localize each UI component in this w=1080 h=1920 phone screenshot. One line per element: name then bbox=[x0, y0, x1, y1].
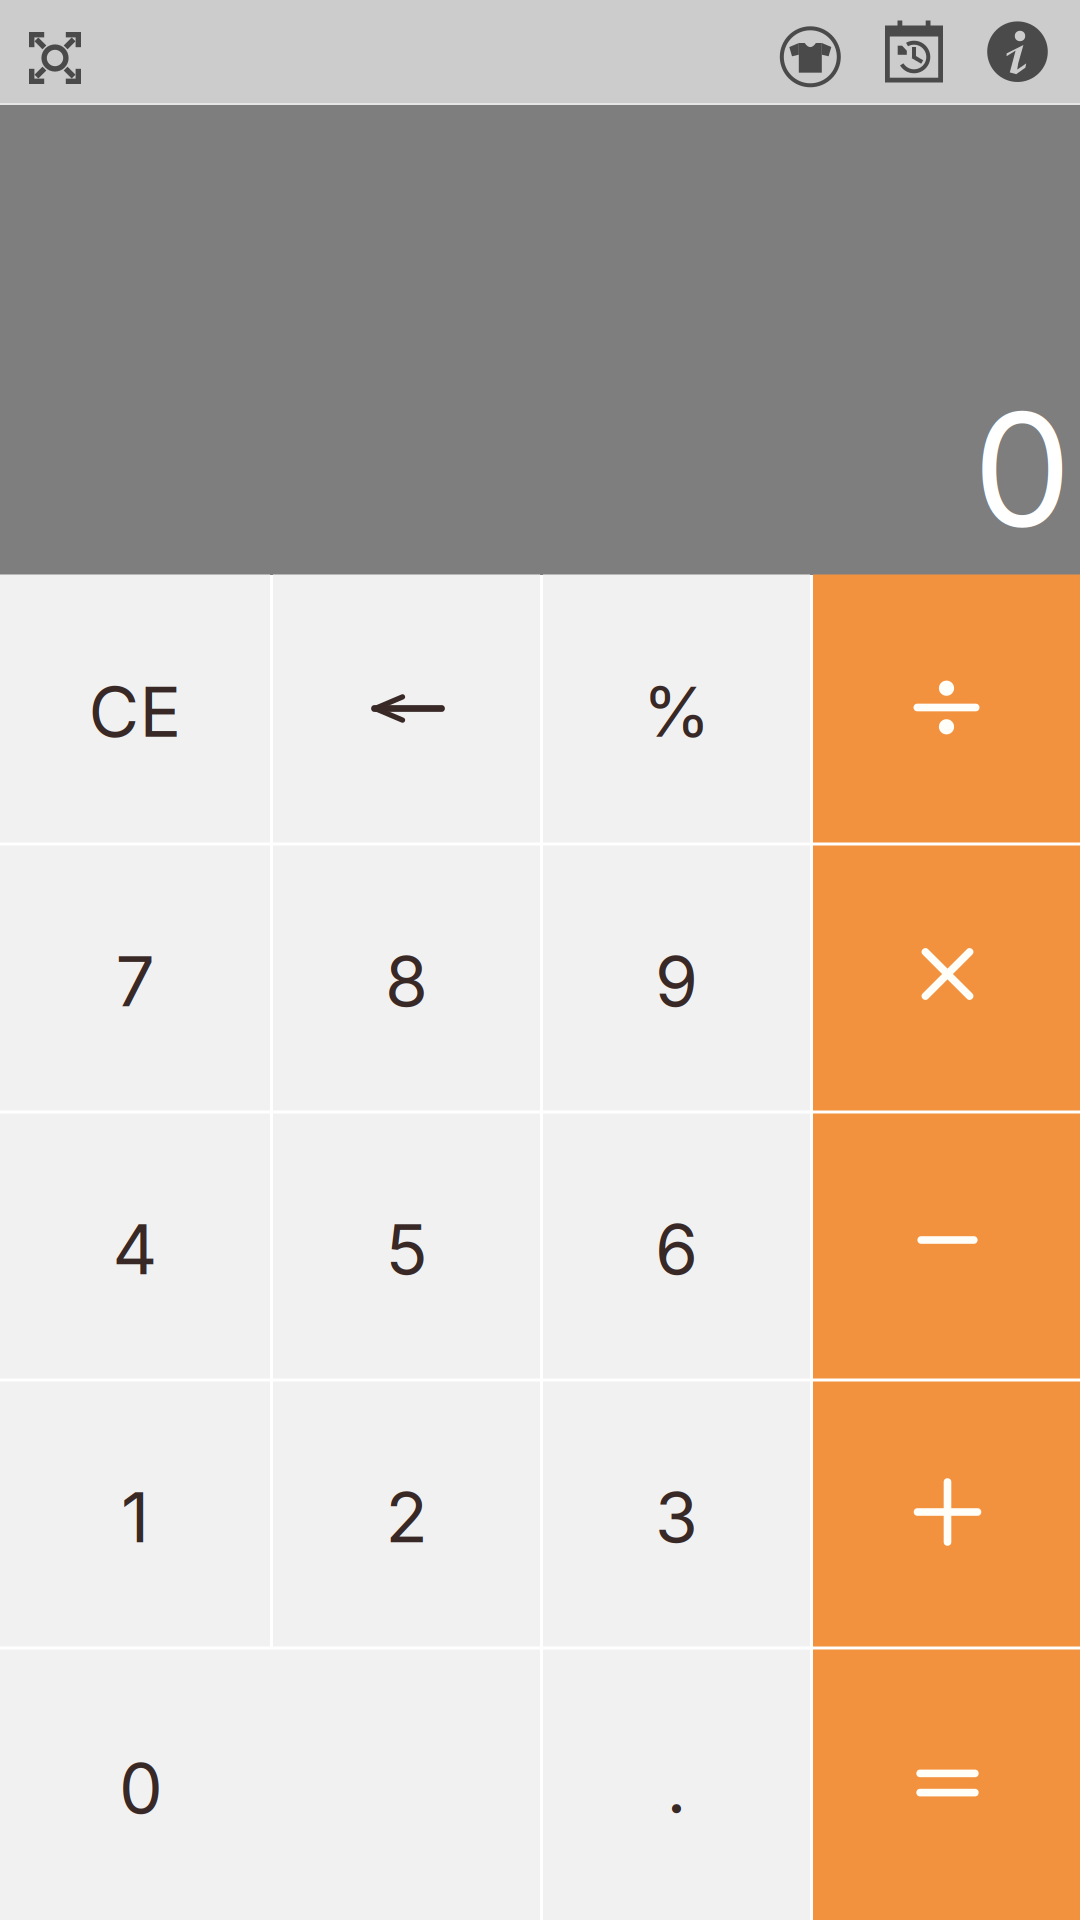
staticText: 0 bbox=[973, 375, 1071, 563]
staticText: . bbox=[666, 1746, 686, 1830]
staticText: 2 bbox=[385, 1475, 427, 1559]
button[interactable]: CE bbox=[0, 574, 270, 842]
button[interactable]: 2 bbox=[273, 1381, 540, 1646]
button[interactable]: 0 bbox=[0, 1649, 540, 1920]
button[interactable]: History bbox=[862, 0, 966, 105]
button[interactable]: Themes bbox=[758, 0, 862, 105]
button[interactable]: Full screen bbox=[0, 0, 110, 105]
button[interactable]: 7 bbox=[0, 845, 270, 1110]
button[interactable]: % bbox=[543, 574, 810, 842]
button[interactable]: 3 bbox=[543, 1381, 810, 1646]
button[interactable]: 5 bbox=[273, 1113, 540, 1378]
button[interactable]: . bbox=[543, 1649, 810, 1920]
staticText: 3 bbox=[655, 1475, 698, 1559]
button[interactable]: Backspace bbox=[273, 574, 540, 842]
staticText: 0 bbox=[119, 1746, 163, 1830]
button[interactable]: 9 bbox=[543, 845, 810, 1110]
staticText: 7 bbox=[115, 939, 154, 1023]
button[interactable]: Equals bbox=[813, 1649, 1080, 1920]
staticText: % bbox=[642, 670, 710, 753]
button[interactable]: Subtract bbox=[813, 1113, 1080, 1378]
staticText: 6 bbox=[655, 1207, 698, 1291]
staticText: CE bbox=[88, 670, 181, 753]
button[interactable]: Info bbox=[966, 0, 1070, 105]
button[interactable]: 1 bbox=[0, 1381, 270, 1646]
staticText: 9 bbox=[655, 939, 698, 1023]
button[interactable]: Multiply bbox=[813, 845, 1080, 1110]
staticText: 5 bbox=[385, 1207, 427, 1291]
button[interactable]: 6 bbox=[543, 1113, 810, 1378]
button[interactable]: 4 bbox=[0, 1113, 270, 1378]
staticText: 8 bbox=[385, 939, 428, 1023]
button[interactable]: 8 bbox=[273, 845, 540, 1110]
button[interactable]: Divide bbox=[813, 574, 1080, 842]
button[interactable]: Add bbox=[813, 1381, 1080, 1646]
staticText: 4 bbox=[112, 1207, 157, 1291]
staticText: 1 bbox=[121, 1475, 149, 1559]
